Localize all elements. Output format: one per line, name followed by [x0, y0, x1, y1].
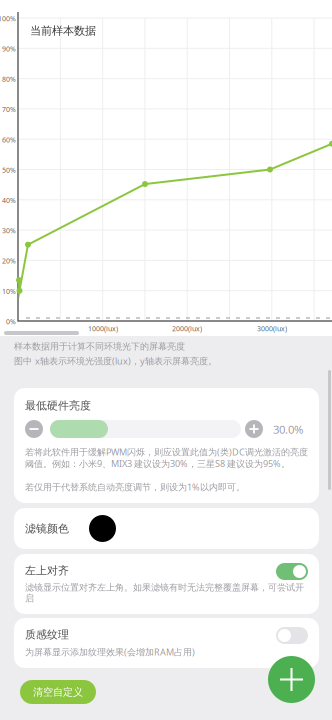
staticText: 图中 x轴表示环境光强度(lux)，y轴表示屏幕亮度。: [14, 355, 217, 367]
staticText: 若仅用于代替系统自动亮度调节，则设为1%以内即可。: [25, 481, 245, 493]
button[interactable]: Toggle off: [276, 627, 308, 644]
button[interactable]: Decrease: [25, 420, 43, 438]
staticText: 70%: [2, 105, 16, 114]
staticText: 质感纹理: [25, 628, 69, 641]
staticText: 60%: [2, 135, 16, 144]
button[interactable]: Add: [268, 656, 315, 703]
staticText: 40%: [2, 196, 16, 205]
staticText: 样本数据用于计算不同环境光下的屏幕亮度: [14, 341, 185, 352]
staticText: 30.0%: [273, 422, 303, 437]
staticText: 30%: [2, 226, 16, 235]
staticText: 50%: [2, 165, 16, 174]
staticText: 滤镜显示位置对齐左上角。如果滤镜有时无法完整覆盖屏幕，可尝试开启: [25, 582, 304, 604]
button[interactable]: Toggle on: [276, 563, 308, 580]
button[interactable]: 清空自定义: [20, 680, 96, 704]
staticText: 左上对齐: [25, 564, 69, 577]
staticText: 10%: [2, 287, 16, 296]
staticText: 若将此软件用于缓解PWM闪烁，则应设置此值为(类)DC调光激活的亮度阈值。例如：…: [25, 446, 308, 469]
staticText: 为屏幕显示添加纹理效果(会增加RAM占用): [25, 646, 195, 658]
staticText: 90%: [2, 44, 16, 53]
staticText: 1000(lux): [88, 324, 118, 333]
staticText: 当前样本数据: [30, 24, 96, 37]
staticText: 100%: [0, 14, 16, 23]
button[interactable]: Increase: [245, 420, 263, 438]
staticText: 3000(lux): [257, 324, 287, 333]
staticText: 2000(lux): [172, 324, 202, 333]
staticText: 清空自定义: [33, 686, 83, 698]
staticText: 80%: [2, 75, 16, 84]
staticText: 最低硬件亮度: [25, 399, 91, 412]
staticText: 20%: [2, 256, 16, 265]
staticText: 0%: [6, 317, 16, 326]
staticText: 滤镜颜色: [25, 522, 69, 535]
button[interactable]: Filter colour: [89, 515, 116, 542]
